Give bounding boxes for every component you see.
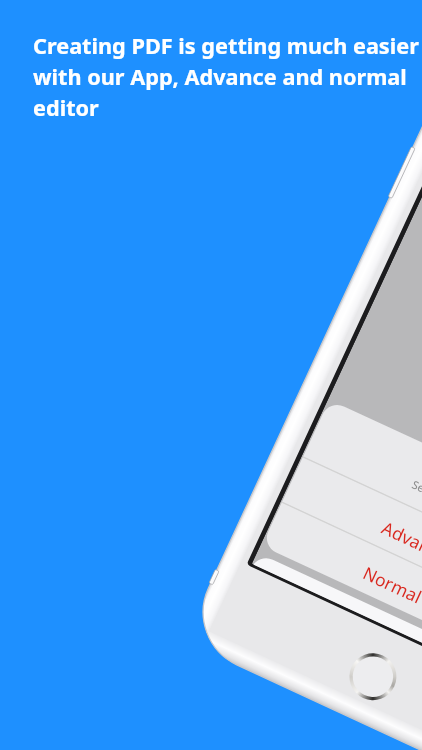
- button[interactable]: Normal editor: [240, 503, 422, 666]
- button[interactable]: Advance editor: [260, 457, 422, 621]
- staticText: Creating PDF is getting much easier with…: [33, 31, 422, 123]
- button[interactable]: Select Option: [281, 400, 422, 564]
- button[interactable]: Home: [350, 634, 396, 680]
